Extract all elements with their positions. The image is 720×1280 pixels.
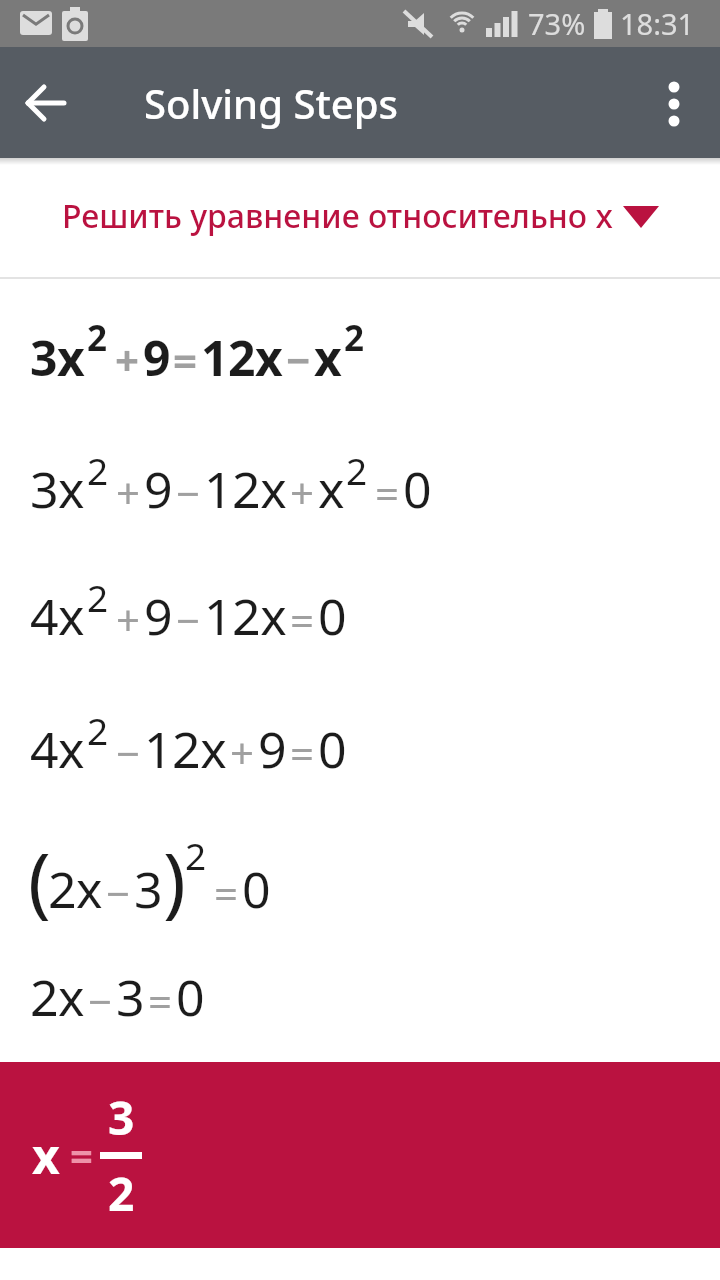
staticText: 2x: [30, 963, 85, 1031]
staticText: (: [28, 828, 48, 932]
staticText: Решить уравнение относительно x: [62, 194, 613, 238]
staticText: 0: [318, 715, 347, 783]
staticText: 3x: [30, 325, 85, 390]
staticText: x: [314, 325, 342, 390]
staticText: 2: [346, 445, 368, 495]
staticText: 2: [87, 572, 109, 622]
staticText: 4x: [30, 715, 85, 783]
button[interactable]: Решить уравнение относительно x: [0, 194, 720, 238]
staticText: 0: [176, 963, 205, 1031]
staticText: 9: [143, 325, 170, 390]
staticText: 18:31: [620, 4, 695, 43]
staticText: +: [230, 724, 255, 781]
staticText: +: [116, 591, 141, 648]
staticText: =: [290, 591, 315, 648]
staticText: 12x: [204, 455, 287, 523]
staticText: ): [163, 828, 183, 932]
staticText: 2: [87, 705, 109, 755]
staticText: 2: [108, 1162, 135, 1225]
staticText: 3x: [30, 455, 85, 523]
staticText: 3: [108, 1086, 135, 1149]
staticText: 73%: [528, 4, 586, 43]
staticText: x: [32, 1123, 60, 1188]
staticText: 0: [403, 455, 432, 523]
button[interactable]: [14, 71, 78, 135]
staticText: 2: [185, 830, 207, 880]
staticText: =: [214, 864, 239, 921]
staticText: 9: [258, 715, 287, 783]
staticText: 0: [318, 582, 347, 650]
staticText: 9: [144, 455, 173, 523]
staticText: =: [290, 724, 315, 781]
staticText: 3: [134, 855, 163, 923]
staticText: 9: [144, 582, 173, 650]
staticText: −: [116, 724, 141, 781]
staticText: Solving Steps: [144, 76, 398, 130]
staticText: 0: [242, 855, 271, 923]
staticText: 2: [87, 445, 109, 495]
staticText: +: [115, 331, 140, 388]
staticText: −: [286, 331, 311, 388]
staticText: +: [290, 464, 315, 521]
staticText: =: [148, 972, 173, 1029]
staticText: 2: [344, 314, 365, 362]
staticText: =: [173, 331, 198, 388]
staticText: −: [106, 864, 131, 921]
staticText: 12x: [144, 715, 227, 783]
staticText: −: [88, 972, 113, 1029]
staticText: 4x: [30, 582, 85, 650]
staticText: −: [176, 591, 201, 648]
staticText: 12x: [201, 325, 283, 390]
staticText: +: [116, 464, 141, 521]
staticText: =: [375, 464, 400, 521]
button[interactable]: [652, 81, 696, 125]
staticText: =: [70, 1128, 93, 1182]
staticText: 2: [87, 314, 108, 362]
staticText: −: [176, 464, 201, 521]
staticText: x: [318, 455, 344, 523]
staticText: 2x: [48, 855, 103, 923]
staticText: 3: [116, 963, 145, 1031]
staticText: 12x: [204, 582, 287, 650]
